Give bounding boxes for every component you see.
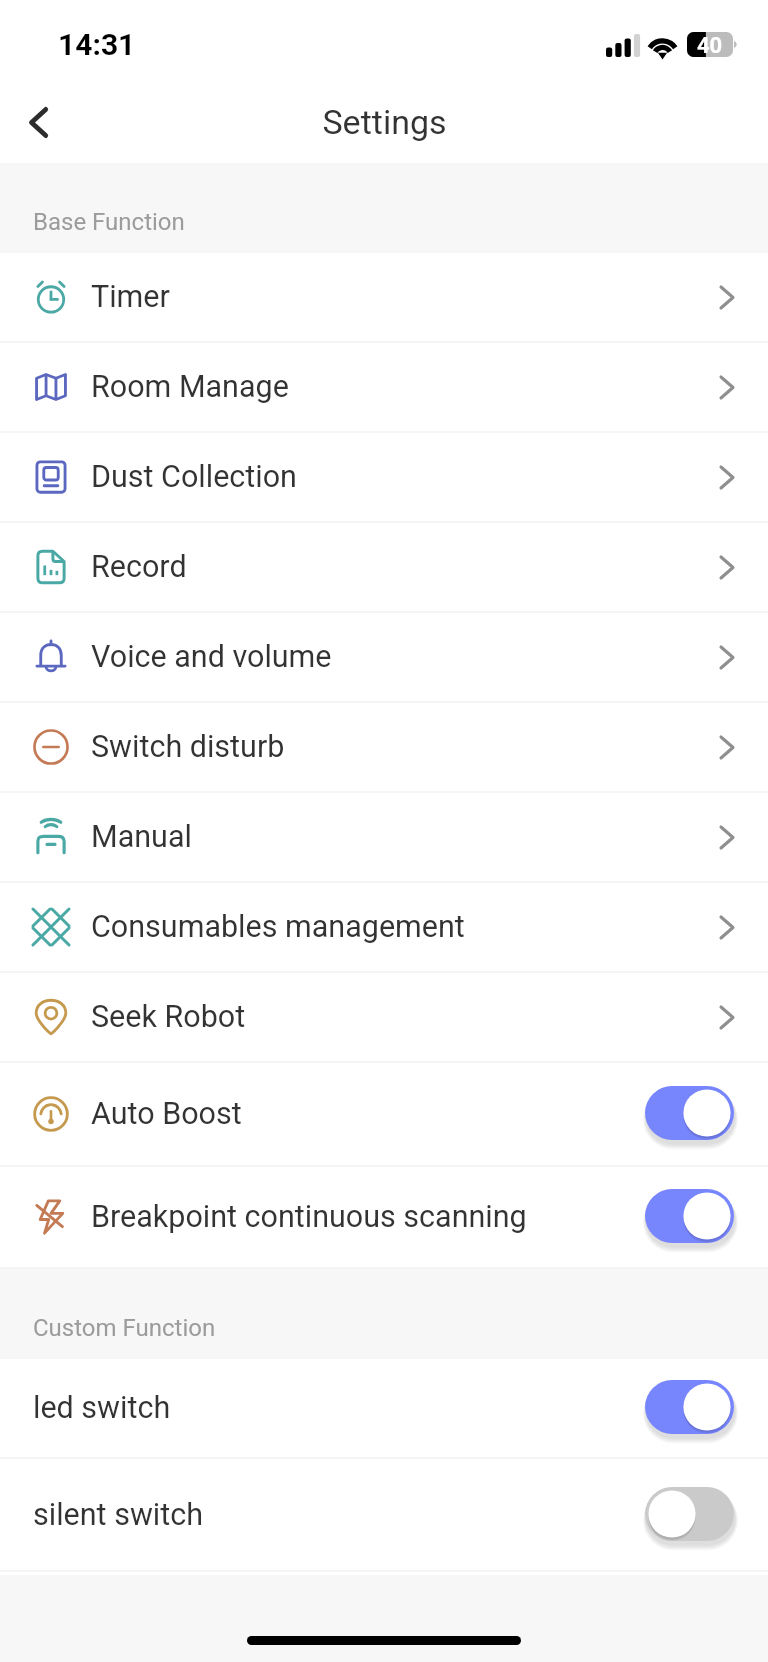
button[interactable]: Auto Boost — [0, 1063, 768, 1165]
other: Open Consumables management — [720, 916, 734, 939]
button[interactable]: Record — [0, 523, 768, 611]
button[interactable]: led switch — [0, 1359, 768, 1457]
staticText: Switch disturb — [91, 729, 285, 765]
button[interactable]: Switch disturb — [0, 703, 768, 791]
staticText: Room Manage — [91, 369, 289, 405]
other: Open Manual — [720, 826, 734, 849]
other: Open Record — [720, 556, 734, 579]
button[interactable]: Breakpoint continuous scanning, on — [645, 1186, 739, 1248]
other: Open Room Manage — [720, 376, 734, 399]
other: Open Switch disturb — [720, 736, 734, 759]
button[interactable]: Dust Collection — [0, 433, 768, 521]
staticText: led switch — [33, 1390, 171, 1426]
staticText: Dust Collection — [91, 459, 297, 495]
staticText: Timer — [91, 279, 170, 315]
other: Open Seek Robot — [720, 1006, 734, 1029]
staticText: Consumables management — [91, 909, 465, 945]
staticText: Custom Function — [33, 1314, 216, 1342]
button[interactable]: Back — [0, 82, 80, 162]
button[interactable]: Timer — [0, 253, 768, 341]
button[interactable]: Room Manage — [0, 343, 768, 431]
staticText: 14:31 — [58, 27, 136, 62]
button[interactable]: led switch, on — [645, 1377, 739, 1439]
staticText: Record — [91, 549, 187, 585]
staticText: 40 — [697, 33, 723, 59]
other: Open Timer — [720, 286, 734, 309]
staticText: silent switch — [33, 1497, 203, 1533]
staticText: Breakpoint continuous scanning — [91, 1199, 527, 1235]
staticText: Voice and volume — [91, 639, 332, 675]
staticText: Auto Boost — [91, 1096, 242, 1132]
other: Open Voice and volume — [720, 646, 734, 669]
button[interactable]: Seek Robot — [0, 973, 768, 1061]
staticText: Base Function — [33, 208, 185, 236]
button[interactable]: Consumables management — [0, 883, 768, 971]
other: Open Dust Collection — [720, 466, 734, 489]
button[interactable]: Manual — [0, 793, 768, 881]
button[interactable]: Breakpoint continuous scanning — [0, 1167, 768, 1267]
button[interactable]: Voice and volume — [0, 613, 768, 701]
button[interactable]: silent switch — [0, 1459, 768, 1570]
staticText: Settings — [322, 102, 447, 142]
staticText: Manual — [91, 819, 192, 855]
button[interactable]: silent switch, off — [645, 1484, 739, 1546]
staticText: Seek Robot — [91, 999, 246, 1035]
button[interactable]: Auto Boost, on — [645, 1083, 739, 1145]
